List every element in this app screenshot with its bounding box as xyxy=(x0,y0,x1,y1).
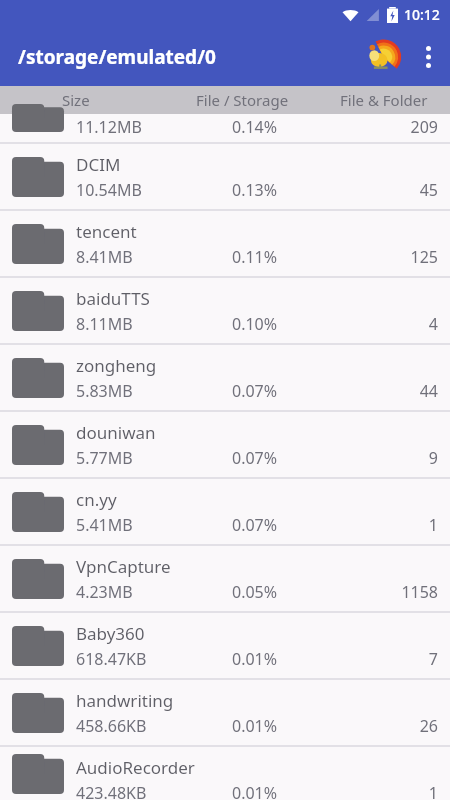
button[interactable]: DCIM xyxy=(0,144,450,209)
staticText: Baby360 xyxy=(76,622,145,645)
button[interactable]: handwriting xyxy=(0,680,450,745)
staticText: 209 xyxy=(410,116,438,138)
staticText: 0.10% xyxy=(232,313,278,335)
staticText: handwriting xyxy=(76,689,174,712)
staticText: VpnCapture xyxy=(76,555,171,578)
staticText: 7 xyxy=(428,648,438,670)
staticText: File & Folder xyxy=(340,90,428,110)
staticText: 9 xyxy=(428,447,438,469)
staticText: 10.54MB xyxy=(76,179,142,201)
staticText: 0.07% xyxy=(232,514,278,536)
staticText: 0.01% xyxy=(232,782,278,800)
button[interactable]: tencent xyxy=(0,211,450,276)
staticText: /storage/emulated/0 xyxy=(18,44,216,70)
button[interactable]: baiduTTS xyxy=(0,278,450,343)
staticText: baiduTTS xyxy=(76,287,150,310)
button[interactable]: VpnCapture xyxy=(0,546,450,611)
staticText: douniwan xyxy=(76,421,156,444)
staticText: 10:12 xyxy=(404,5,440,24)
staticText: 26 xyxy=(419,715,438,737)
button[interactable]: cn.yy xyxy=(0,479,450,544)
staticText: tencent xyxy=(76,220,137,243)
button[interactable]: App logo xyxy=(360,34,406,80)
staticText: 1158 xyxy=(401,581,438,603)
button[interactable]: zongheng xyxy=(0,345,450,410)
staticText: 423.48KB xyxy=(76,782,147,800)
staticText: File / Storage xyxy=(196,90,289,110)
staticText: 8.41MB xyxy=(76,246,133,268)
staticText: 0.01% xyxy=(232,648,278,670)
staticText: 0.14% xyxy=(232,116,278,138)
staticText: 4 xyxy=(428,313,438,335)
staticText: cn.yy xyxy=(76,488,117,511)
staticText: DCIM xyxy=(76,153,121,176)
staticText: 8.11MB xyxy=(76,313,133,335)
staticText: 618.47KB xyxy=(76,648,147,670)
staticText: Size xyxy=(62,90,90,110)
button[interactable]: douniwan xyxy=(0,412,450,477)
staticText: 5.77MB xyxy=(76,447,133,469)
button[interactable]: More options xyxy=(406,35,450,79)
staticText: 0.05% xyxy=(232,581,278,603)
staticText: 5.83MB xyxy=(76,380,133,402)
staticText: 458.66KB xyxy=(76,715,147,737)
button[interactable]: 11.12MB xyxy=(0,114,450,142)
staticText: 1 xyxy=(428,782,438,800)
staticText: 0.01% xyxy=(232,715,278,737)
staticText: AudioRecorder xyxy=(76,756,195,779)
staticText: 5.41MB xyxy=(76,514,133,536)
staticText: zongheng xyxy=(76,354,157,377)
button[interactable]: AudioRecorder xyxy=(0,747,450,800)
staticText: 44 xyxy=(419,380,438,402)
staticText: 0.13% xyxy=(232,179,278,201)
staticText: 1 xyxy=(428,514,438,536)
staticText: 125 xyxy=(410,246,438,268)
staticText: 0.07% xyxy=(232,380,278,402)
staticText: 0.11% xyxy=(232,246,278,268)
staticText: 4.23MB xyxy=(76,581,133,603)
staticText: 11.12MB xyxy=(76,116,142,138)
staticText: 0.07% xyxy=(232,447,278,469)
staticText: 45 xyxy=(419,179,438,201)
button[interactable]: Baby360 xyxy=(0,613,450,678)
